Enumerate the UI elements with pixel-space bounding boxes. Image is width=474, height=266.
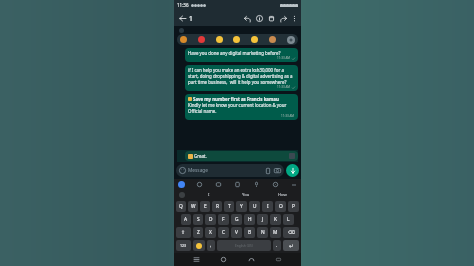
button[interactable] bbox=[180, 34, 295, 45]
button[interactable]: X bbox=[205, 227, 216, 238]
staticText: T bbox=[228, 203, 231, 210]
button[interactable]: Send voice message bbox=[286, 164, 299, 177]
button[interactable]: You bbox=[227, 190, 264, 200]
button[interactable]: Tool 1 bbox=[214, 180, 223, 189]
button[interactable]: G bbox=[231, 214, 242, 225]
button[interactable]: F bbox=[218, 214, 229, 225]
staticText: Q bbox=[179, 203, 183, 210]
button[interactable]: A bbox=[181, 214, 191, 225]
button[interactable]: I bbox=[262, 201, 273, 212]
staticText: I bbox=[208, 192, 210, 198]
staticText: , bbox=[210, 242, 212, 249]
button[interactable]: B bbox=[244, 227, 255, 238]
button[interactable]: Back bbox=[246, 254, 257, 265]
button[interactable]: Recents bbox=[191, 254, 202, 265]
staticText: ⇧ bbox=[181, 230, 186, 236]
button[interactable]: S bbox=[193, 214, 203, 225]
button[interactable]: Save my number first as Francis kamau bbox=[185, 94, 298, 120]
staticText: if I can help you make an extra ksh30,00… bbox=[188, 67, 295, 85]
staticText: Kindly let me know your current location… bbox=[188, 102, 295, 114]
staticText: 11:36 bbox=[177, 2, 189, 8]
button[interactable]: Keyboard bbox=[273, 254, 284, 265]
staticText: ↵ bbox=[289, 243, 294, 249]
staticText: Save my number first as Francis kamau bbox=[193, 96, 279, 102]
button[interactable]: Tool 3 bbox=[252, 180, 261, 189]
staticText: D bbox=[209, 216, 213, 223]
button[interactable]: O bbox=[275, 201, 286, 212]
staticText: E bbox=[204, 203, 207, 210]
button[interactable]: L bbox=[283, 214, 294, 225]
button[interactable]: , bbox=[207, 240, 215, 251]
button[interactable]: Message bbox=[176, 164, 284, 177]
button[interactable]: N bbox=[257, 227, 268, 238]
button[interactable]: E bbox=[200, 201, 210, 212]
button[interactable]: R bbox=[212, 201, 222, 212]
button[interactable]: 123 bbox=[176, 240, 191, 251]
staticText: J bbox=[262, 216, 264, 223]
button[interactable]: Tool 4 bbox=[271, 180, 280, 189]
button[interactable]: T bbox=[224, 201, 234, 212]
button[interactable]: U bbox=[249, 201, 260, 212]
button[interactable]: Tool 0 bbox=[195, 180, 204, 189]
button[interactable]: Back bbox=[176, 12, 188, 24]
button[interactable]: ⌫ bbox=[283, 227, 299, 238]
staticText: . bbox=[276, 242, 278, 249]
button[interactable]: Z bbox=[193, 227, 203, 238]
button[interactable]: C bbox=[218, 227, 229, 238]
staticText: ⌫ bbox=[288, 230, 295, 236]
button[interactable]: ⇧ bbox=[176, 227, 191, 238]
staticText: Y bbox=[240, 203, 243, 210]
button[interactable]: How bbox=[264, 190, 301, 200]
button[interactable]: Suggestions bbox=[174, 190, 190, 200]
staticText: Great. bbox=[194, 153, 207, 159]
button[interactable]: Emoji bbox=[193, 240, 205, 251]
staticText: L bbox=[287, 216, 290, 223]
staticText: I bbox=[267, 203, 269, 210]
staticText: R bbox=[216, 203, 219, 210]
button[interactable]: J bbox=[257, 214, 268, 225]
staticText: N bbox=[261, 229, 265, 236]
button[interactable]: Delete bbox=[265, 12, 277, 24]
button[interactable]: Q bbox=[176, 201, 186, 212]
staticText: B bbox=[248, 229, 252, 236]
button[interactable]: Have you done any digital marketing befo… bbox=[185, 48, 298, 62]
button[interactable]: H bbox=[244, 214, 255, 225]
button[interactable]: Tool 2 bbox=[233, 180, 242, 189]
button[interactable]: Info bbox=[253, 12, 265, 24]
staticText: 11:33 AM bbox=[277, 56, 291, 60]
button[interactable]: D bbox=[205, 214, 216, 225]
staticText: English (US) bbox=[235, 244, 253, 248]
button[interactable]: Forward bbox=[277, 12, 289, 24]
button[interactable]: Reply bbox=[241, 12, 253, 24]
staticText: G bbox=[235, 216, 239, 223]
button[interactable]: . bbox=[273, 240, 281, 251]
staticText: A bbox=[184, 216, 188, 223]
staticText: M bbox=[273, 229, 278, 236]
staticText: 11:33 AM bbox=[277, 85, 291, 89]
staticText: 123 bbox=[180, 243, 187, 248]
button[interactable]: More options bbox=[289, 13, 299, 23]
button[interactable]: K bbox=[270, 214, 281, 225]
button[interactable]: Y bbox=[236, 201, 247, 212]
button[interactable]: Enter bbox=[283, 240, 299, 251]
button[interactable]: P bbox=[288, 201, 299, 212]
button[interactable]: Google bbox=[178, 181, 185, 188]
staticText: How bbox=[278, 192, 287, 198]
button[interactable]: M bbox=[270, 227, 281, 238]
staticText: V bbox=[235, 229, 238, 236]
button[interactable]: if I can help you make an extra ksh30,00… bbox=[185, 65, 298, 91]
staticText: U bbox=[253, 203, 257, 210]
button[interactable]: Collapse bbox=[290, 181, 297, 188]
button[interactable]: Space bbox=[217, 240, 271, 251]
button[interactable]: W bbox=[188, 201, 198, 212]
staticText: K bbox=[274, 216, 277, 223]
staticText: C bbox=[222, 229, 226, 236]
staticText: Message bbox=[188, 167, 208, 174]
button[interactable]: Home bbox=[218, 254, 229, 265]
button[interactable]: I bbox=[190, 190, 227, 200]
button[interactable]: Great. bbox=[185, 151, 298, 161]
staticText: F bbox=[222, 216, 225, 223]
staticText: You bbox=[242, 192, 250, 198]
button[interactable]: V bbox=[231, 227, 242, 238]
staticText: Z bbox=[197, 229, 200, 236]
